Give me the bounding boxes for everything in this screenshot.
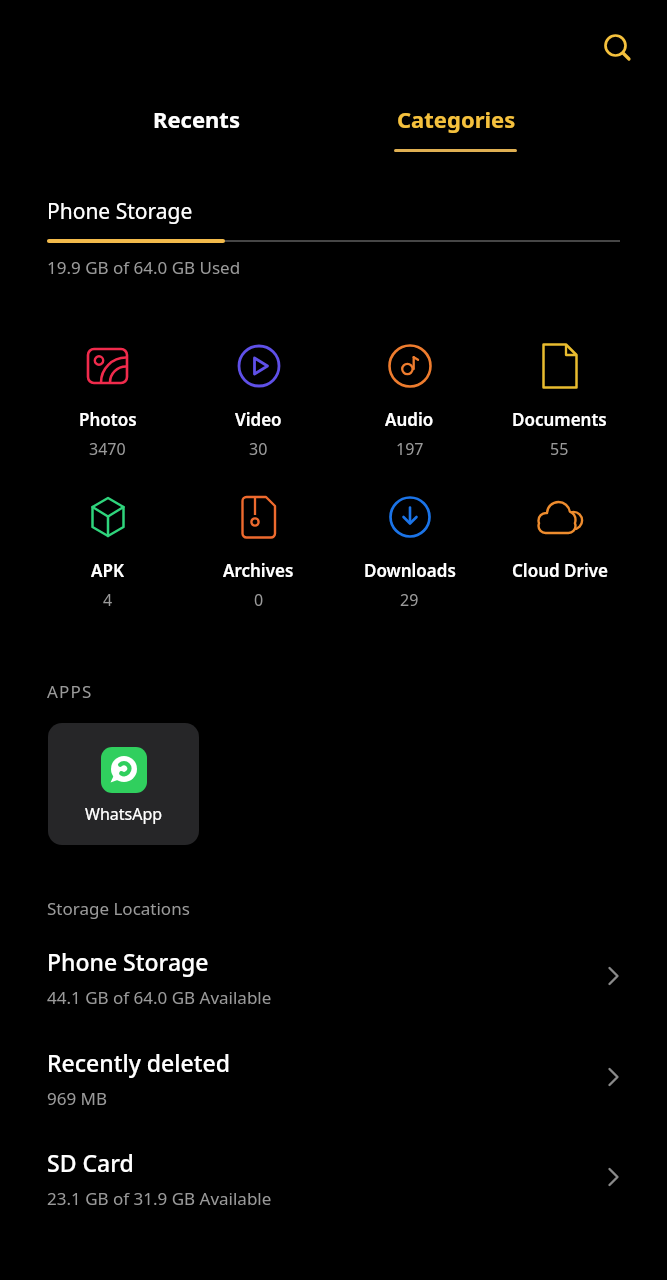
button[interactable]: Audio: [334, 343, 485, 460]
button[interactable]: SD Card: [0, 1141, 667, 1241]
button[interactable]: [589, 19, 645, 75]
staticText: 969 MB: [47, 1087, 108, 1110]
staticText: Recently deleted: [47, 1047, 230, 1078]
staticText: 3470: [89, 438, 126, 460]
staticText: 30: [249, 438, 268, 460]
staticText: 19.9 GB of 64.0 GB Used: [47, 256, 241, 279]
staticText: 0: [254, 589, 264, 611]
staticText: Cloud Drive: [512, 559, 608, 582]
staticText: 29: [400, 589, 419, 611]
staticText: Phone Storage: [47, 946, 209, 977]
staticText: 23.1 GB of 31.9 GB Available: [47, 1187, 272, 1210]
button[interactable]: Recently deleted: [0, 1041, 667, 1141]
staticText: 44.1 GB of 64.0 GB Available: [47, 986, 272, 1009]
staticText: 197: [396, 438, 424, 460]
button[interactable]: Documents: [484, 343, 635, 460]
button[interactable]: Photos: [32, 343, 183, 460]
staticText: Categories: [397, 104, 516, 134]
staticText: Documents: [512, 408, 607, 431]
button[interactable]: Recents: [66, 91, 326, 147]
staticText: APK: [91, 559, 124, 582]
staticText: WhatsApp: [85, 803, 163, 825]
button[interactable]: Video: [183, 343, 334, 460]
staticText: APPS: [47, 680, 93, 703]
staticText: 4: [103, 589, 113, 611]
button[interactable]: APK: [32, 494, 183, 611]
button[interactable]: Archives: [183, 494, 334, 611]
staticText: SD Card: [47, 1147, 134, 1178]
staticText: Audio: [385, 408, 434, 431]
staticText: Archives: [223, 559, 294, 582]
staticText: Downloads: [364, 559, 456, 582]
staticText: Video: [235, 408, 282, 431]
button[interactable]: WhatsApp: [48, 723, 199, 845]
staticText: Phone Storage: [47, 197, 193, 226]
button[interactable]: Downloads: [334, 494, 485, 611]
staticText: Recents: [153, 104, 240, 134]
button[interactable]: Categories: [326, 91, 586, 147]
button[interactable]: Phone Storage: [0, 940, 667, 1040]
staticText: 55: [550, 438, 569, 460]
button[interactable]: Cloud Drive: [484, 494, 635, 589]
staticText: Storage Locations: [47, 897, 190, 920]
staticText: Photos: [79, 408, 137, 431]
